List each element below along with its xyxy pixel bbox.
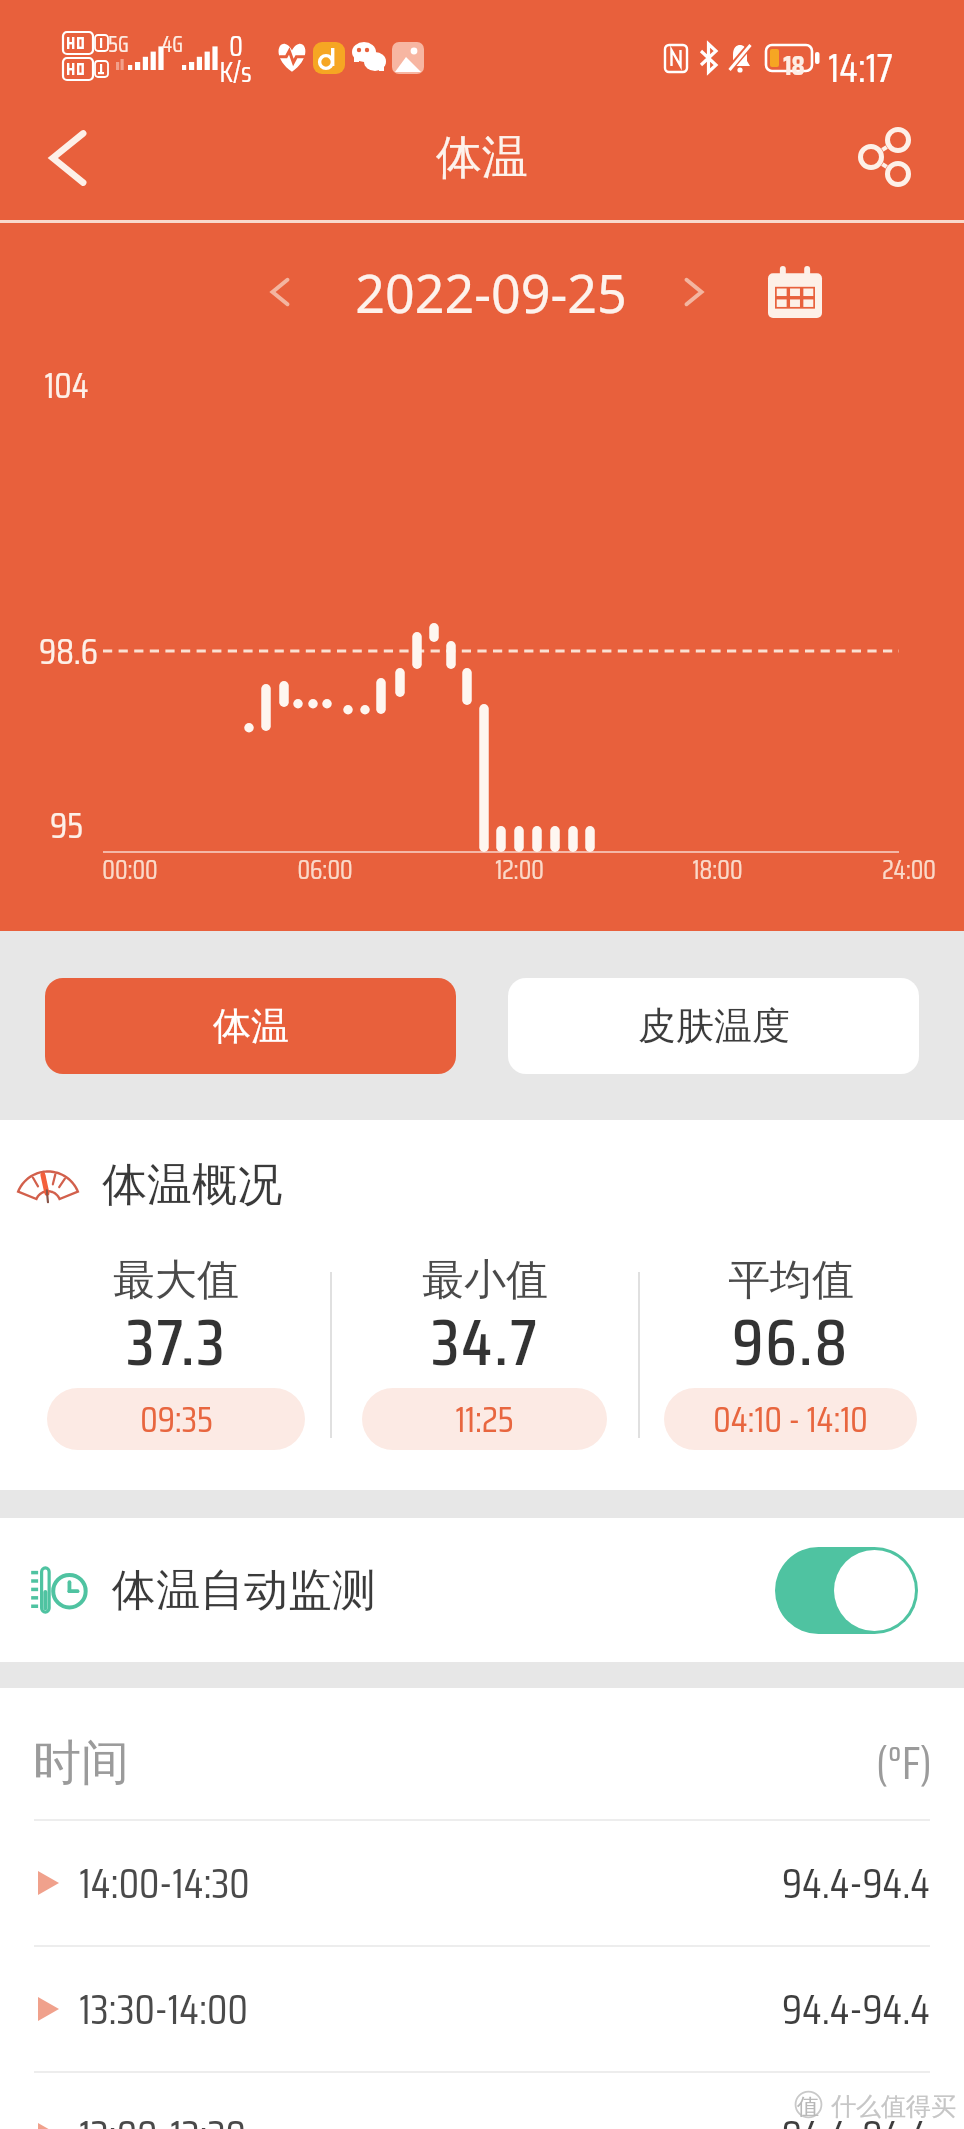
button[interactable]: Back — [26, 116, 110, 200]
button[interactable]: Share — [843, 115, 927, 199]
staticText: 时间 — [33, 1733, 129, 1793]
staticText: 什么值得买 — [831, 2091, 956, 2122]
staticText: 95 — [50, 797, 83, 854]
staticText: 最小值 — [422, 1254, 548, 1307]
staticText: 00:00 — [102, 849, 158, 890]
staticText: 06:00 — [297, 849, 353, 890]
staticText: 96.8 — [732, 1290, 849, 1394]
button[interactable]: 13:30-14:00 — [0, 1945, 964, 2071]
staticText: 皮肤温度 — [638, 1002, 790, 1050]
staticText: 0 — [229, 24, 243, 68]
button[interactable]: 13:00-13:30 — [0, 2071, 964, 2129]
button[interactable]: 体温自动监测 — [0, 1518, 964, 1662]
staticText: 14:00-14:30 — [79, 1850, 250, 1916]
staticText: 94.4-94.4 — [782, 1850, 930, 1916]
staticText: 18 — [783, 44, 805, 86]
button[interactable]: Previous day — [252, 264, 308, 320]
button[interactable]: 皮肤温度 — [508, 978, 919, 1074]
staticText: 34.7 — [431, 1290, 539, 1394]
staticText: 94.4-94.4 — [782, 1976, 930, 2042]
staticText: K/s — [219, 50, 252, 94]
staticText: 体温 — [213, 1002, 289, 1050]
staticText: 体温 — [436, 129, 528, 187]
staticText: 37.3 — [126, 1290, 227, 1394]
button[interactable]: 体温 — [45, 978, 456, 1074]
button[interactable]: Calendar — [758, 255, 832, 329]
staticText: 2022-09-25 — [355, 257, 627, 328]
staticText: 体温自动监测 — [112, 1563, 376, 1618]
staticText: 体温概况 — [102, 1157, 282, 1214]
staticText: 13:30-14:00 — [79, 1976, 248, 2042]
staticText: 14:17 — [828, 37, 893, 100]
staticText: 13:00-13:30 — [79, 2102, 246, 2129]
staticText: 值 — [797, 2093, 819, 2121]
staticText: 最大值 — [113, 1254, 239, 1307]
staticText: 94.4-94.4 — [782, 2102, 930, 2129]
staticText: 11:25 — [455, 1391, 514, 1448]
staticText: (°F) — [876, 1727, 932, 1799]
staticText: 24:00 — [882, 849, 936, 890]
staticText: 104 — [44, 357, 89, 414]
staticText: 12:00 — [495, 849, 544, 890]
staticText: 04:10 - 14:10 — [713, 1391, 868, 1448]
staticText: 5G — [108, 27, 129, 62]
staticText: 18:00 — [692, 849, 743, 890]
button[interactable]: 14:00-14:30 — [0, 1819, 964, 1945]
staticText: 98.6 — [39, 623, 98, 680]
staticText: 4G — [162, 27, 183, 62]
button[interactable]: Next day — [666, 264, 722, 320]
staticText: 平均值 — [728, 1254, 854, 1307]
staticText: 09:35 — [140, 1391, 213, 1448]
